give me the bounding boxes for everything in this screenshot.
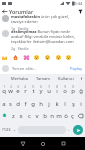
- button[interactable]: Period: [66, 122, 72, 137]
- button[interactable]: s: [7, 96, 14, 109]
- staticText: 4: [24, 85, 26, 89]
- button[interactable]: z: [9, 109, 17, 122]
- staticText: v: [35, 112, 39, 120]
- button[interactable]: Recents: [59, 137, 68, 150]
- button[interactable]: Emoji: [56, 55, 61, 60]
- staticText: x: [19, 112, 23, 120]
- staticText: j: [48, 100, 50, 108]
- staticText: 8: [56, 85, 58, 89]
- button[interactable]: Emoji: [45, 55, 50, 60]
- staticText: Yorumlar: [9, 8, 34, 15]
- button[interactable]: c: [25, 109, 33, 122]
- button[interactable]: mustafakeskin ürün çok güzel, tavsiye ed…: [0, 14, 85, 31]
- staticText: mustafakeskin ürün çok güzel, tavsiye ed…: [11, 14, 82, 24]
- button[interactable]: Shift: [0, 109, 9, 122]
- button[interactable]: Kullanıcı: [54, 74, 77, 83]
- button[interactable]: m: [55, 109, 62, 122]
- button[interactable]: 8: [53, 83, 61, 96]
- staticText: r: [24, 87, 27, 95]
- staticText: ç: [71, 112, 74, 120]
- staticText: ı: [56, 87, 58, 95]
- button[interactable]: 7: [45, 83, 53, 96]
- staticText: o: [63, 87, 67, 95]
- button[interactable]: n: [48, 109, 55, 122]
- button[interactable]: ş: [69, 96, 77, 109]
- button[interactable]: Merhaba: [8, 74, 31, 83]
- staticText: b: [43, 112, 47, 120]
- button[interactable]: g: [29, 96, 37, 109]
- staticText: 6: [40, 85, 42, 89]
- staticText: y: [39, 87, 43, 95]
- button[interactable]: Emoji: [13, 55, 18, 60]
- staticText: 5: [32, 85, 34, 89]
- button[interactable]: j: [45, 96, 53, 109]
- staticText: w: [8, 87, 13, 95]
- button[interactable]: Back: [18, 137, 27, 150]
- button[interactable]: Send: [73, 125, 83, 135]
- button[interactable]: h: [37, 96, 45, 109]
- button[interactable]: d: [14, 96, 21, 109]
- button[interactable]: Emoji: [2, 55, 7, 60]
- staticText: m: [56, 112, 62, 120]
- staticText: 2g Yanıtla: [11, 46, 29, 51]
- staticText: Paylaş: [70, 66, 82, 71]
- staticText: 1: [3, 85, 5, 89]
- button[interactable]: k: [53, 96, 61, 109]
- button[interactable]: a: [0, 96, 7, 109]
- button[interactable]: Sort: [76, 7, 85, 15]
- button[interactable]: Tamam: [31, 74, 54, 83]
- button[interactable]: 1: [0, 83, 7, 96]
- staticText: s: [9, 100, 12, 108]
- staticText: 0: [72, 85, 74, 89]
- staticText: a: [2, 100, 6, 108]
- button[interactable]: Home: [38, 137, 47, 150]
- button[interactable]: Emoji: [34, 55, 39, 60]
- button[interactable]: ğ: [77, 83, 85, 96]
- staticText: q: [2, 87, 6, 95]
- button[interactable]: Backspace: [76, 109, 85, 122]
- staticText: 2: [10, 85, 12, 89]
- button[interactable]: 6: [37, 83, 45, 96]
- button[interactable]: Emoji: [24, 55, 29, 60]
- staticText: 9: [64, 85, 66, 89]
- staticText: ö: [64, 112, 68, 120]
- button[interactable]: ç: [69, 109, 76, 122]
- button[interactable]: 9: [61, 83, 69, 96]
- button[interactable]: i: [77, 96, 85, 109]
- staticText: 1g Yanıtla: [11, 26, 29, 31]
- staticText: 09:44: [72, 1, 83, 6]
- staticText: c: [28, 112, 31, 120]
- button[interactable]: Comma: [12, 122, 18, 137]
- staticText: l: [64, 100, 66, 108]
- button[interactable]: v: [33, 109, 41, 122]
- button[interactable]: f: [21, 96, 29, 109]
- staticText: i: [80, 100, 82, 108]
- button[interactable]: b: [41, 109, 48, 122]
- staticText: p: [71, 87, 75, 95]
- button[interactable]: deslimyilmaz Bunun fiyatı nedir acaba? B…: [0, 29, 85, 51]
- button[interactable]: l: [61, 96, 69, 109]
- button[interactable]: Back: [0, 7, 9, 15]
- button[interactable]: 5: [29, 83, 37, 96]
- staticText: .: [68, 126, 70, 133]
- staticText: Yorum ekle...: [12, 66, 37, 71]
- staticText: t: [32, 87, 35, 95]
- button[interactable]: 2: [7, 83, 14, 96]
- staticText: Tamam: [36, 76, 50, 81]
- button[interactable]: 3: [14, 83, 21, 96]
- staticText: u: [47, 87, 51, 95]
- staticText: k: [55, 100, 59, 108]
- staticText: ğ: [79, 87, 83, 95]
- button[interactable]: Emoji: [66, 55, 71, 60]
- button[interactable]: More: [77, 74, 85, 83]
- button[interactable]: 4: [21, 83, 29, 96]
- button[interactable]: x: [17, 109, 25, 122]
- button[interactable]: ?123: [0, 122, 12, 137]
- staticText: h: [39, 100, 43, 108]
- button[interactable]: Paylaş: [69, 65, 83, 72]
- button[interactable]: ö: [62, 109, 69, 122]
- button[interactable]: 0: [69, 83, 77, 96]
- staticText: 7: [48, 85, 50, 89]
- staticText: f: [24, 100, 27, 108]
